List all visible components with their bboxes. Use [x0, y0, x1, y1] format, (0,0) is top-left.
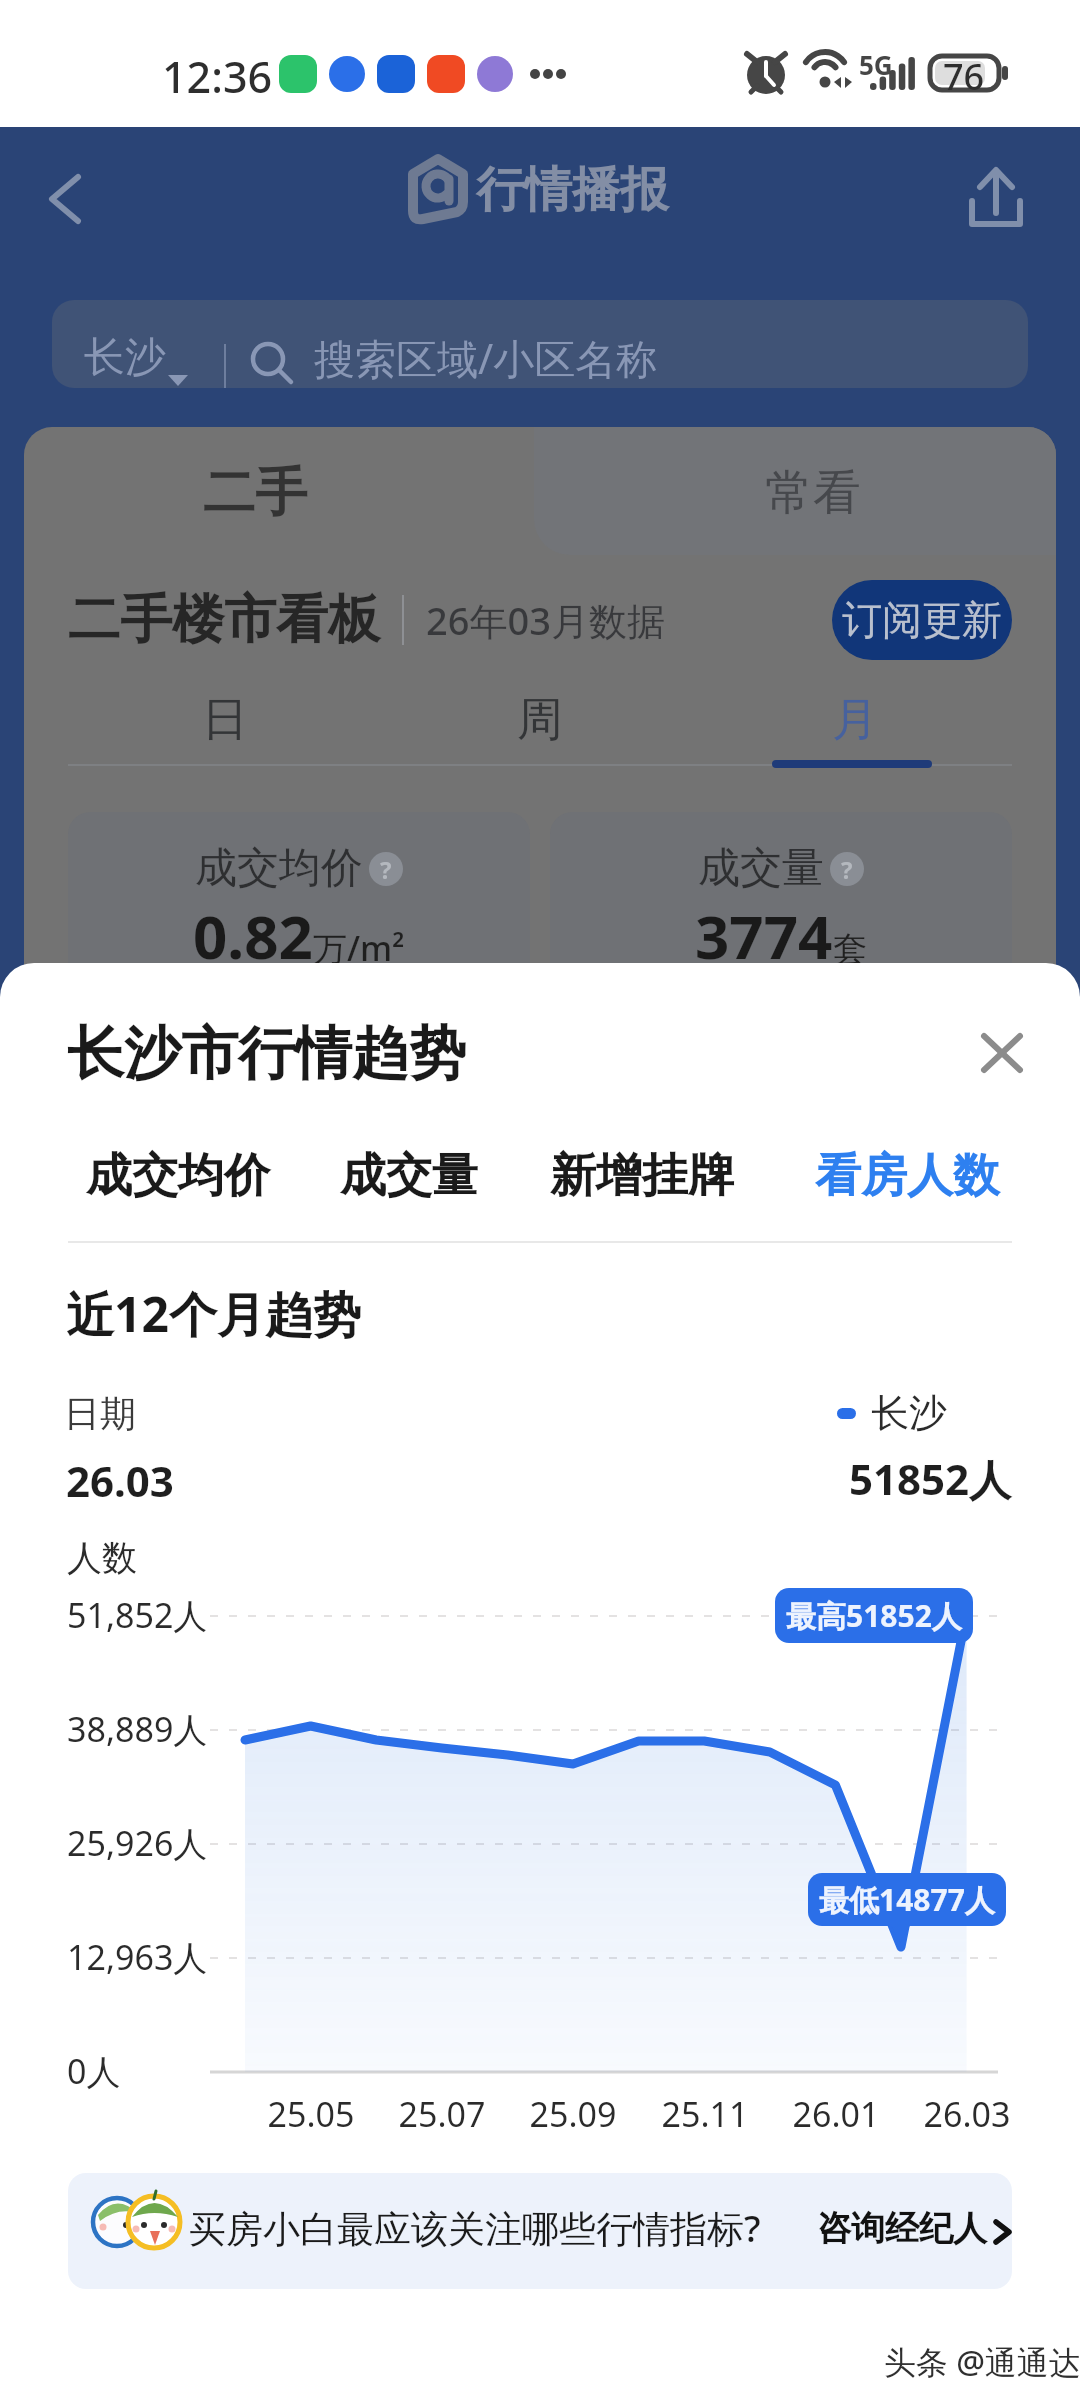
button[interactable]: 买房小白最应该关注哪些行情指标?	[68, 2173, 1012, 2289]
button[interactable]: 新增挂牌	[550, 1147, 734, 1205]
staticText: 12:36	[162, 47, 273, 106]
staticText: 长沙市行情趋势	[67, 1018, 466, 1090]
staticText: 新增挂牌	[550, 1147, 734, 1205]
button[interactable]: 成交均价	[86, 1147, 270, 1205]
staticText: 成交均价	[86, 1147, 270, 1205]
staticText: 38,889人	[67, 1706, 208, 1752]
staticText: 51,852人	[67, 1592, 208, 1638]
staticText: 26年03月数据	[426, 594, 665, 646]
button[interactable]: 常看	[534, 427, 1056, 555]
staticText: 25,926人	[67, 1820, 208, 1866]
staticText: 25.11	[635, 2091, 775, 2137]
staticText: ?	[380, 853, 392, 886]
staticText: 最高51852人	[786, 1595, 962, 1636]
staticText: 看房人数	[815, 1147, 999, 1205]
staticText: 套	[833, 928, 867, 971]
staticText: 成交均价	[195, 842, 363, 895]
staticText: 二手	[203, 460, 307, 526]
staticText: 76	[943, 52, 985, 101]
staticText: 12,963人	[67, 1934, 208, 1980]
button[interactable]: 月	[697, 691, 1012, 747]
staticText: 买房小白最应该关注哪些行情指标?	[189, 2202, 761, 2253]
staticText: 51852人	[849, 1450, 1012, 1507]
staticText: 成交量	[698, 842, 824, 895]
staticText: 咨询经纪人	[817, 2207, 987, 2250]
staticText: 月	[832, 691, 878, 747]
staticText: 5G	[859, 47, 893, 82]
staticText: ?	[841, 853, 853, 886]
staticText: 万/m²	[313, 925, 405, 971]
staticText: 26.03	[897, 2091, 1037, 2137]
staticText: 3774	[695, 895, 833, 977]
button[interactable]: 二手	[24, 427, 534, 555]
button[interactable]: Close	[958, 1011, 1046, 1099]
button[interactable]: 订阅更新	[832, 580, 1012, 660]
button[interactable]: 周	[382, 691, 697, 747]
staticText: 周	[517, 691, 563, 747]
staticText: 0.82	[193, 895, 313, 977]
staticText: 25.05	[241, 2091, 381, 2137]
button[interactable]: Share	[946, 149, 1046, 249]
staticText: 最低14877人	[819, 1879, 995, 1920]
staticText: 近12个月趋势	[66, 1281, 361, 1347]
staticText: 日	[202, 691, 248, 747]
staticText: 长沙	[871, 1389, 947, 1437]
staticText: 26.03	[66, 1452, 174, 1509]
staticText: 行情播报	[476, 160, 668, 220]
staticText: 25.07	[372, 2091, 512, 2137]
staticText: 25.09	[503, 2091, 643, 2137]
staticText: 常看	[765, 463, 861, 523]
staticText: 人数	[67, 1536, 137, 1580]
staticText: 搜索区域/小区名称	[314, 330, 658, 386]
staticText: 日期	[64, 1391, 136, 1436]
button[interactable]: 日	[68, 691, 382, 747]
staticText: 二手楼市看板	[68, 587, 380, 653]
staticText: 头条 @通通达	[884, 2340, 1080, 2384]
button[interactable]: Back	[20, 149, 116, 245]
staticText: 订阅更新	[842, 595, 1002, 645]
staticText: 0人	[67, 2048, 121, 2094]
button[interactable]: 看房人数	[815, 1147, 999, 1205]
button[interactable]: 长沙	[52, 300, 1028, 388]
staticText: 成交量	[340, 1147, 478, 1205]
staticText: 长沙	[84, 332, 166, 384]
button[interactable]: 成交量	[340, 1147, 478, 1205]
staticText: 26.01	[766, 2091, 906, 2137]
